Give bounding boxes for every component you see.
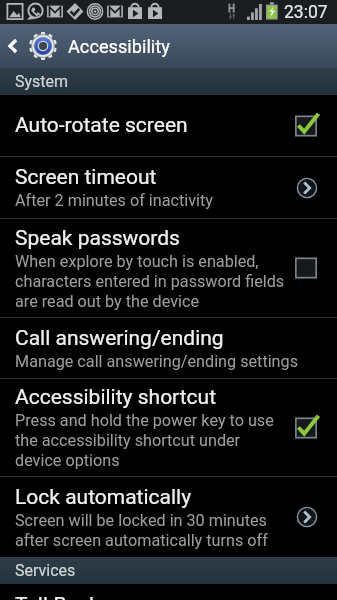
button[interactable]: TalkBack <box>0 584 337 600</box>
button[interactable]: Screen timeout <box>0 157 337 218</box>
button[interactable]: Call answering/ending <box>0 318 337 378</box>
staticText: Call answering/ending <box>15 326 224 351</box>
button[interactable]: Auto-rotate screen <box>0 95 337 156</box>
staticText: After 2 minutes of inactivity <box>15 191 213 210</box>
button[interactable]: Speak passwords <box>0 219 337 317</box>
staticText: System <box>15 72 69 91</box>
staticText: Screen will be locked in 30 minutes afte… <box>15 511 268 550</box>
button[interactable]: Lock automatically <box>0 477 337 557</box>
staticText: When explore by touch is enabled, charac… <box>15 252 285 311</box>
staticText: Accessibility shortcut <box>15 385 217 410</box>
staticText: Screen timeout <box>15 165 157 190</box>
staticText: Manage call answering/ending settings <box>15 352 298 371</box>
staticText: TalkBack <box>15 593 100 600</box>
staticText: Lock automatically <box>15 485 192 510</box>
staticText: Services <box>15 561 76 580</box>
staticText: Press and hold the power key to use the … <box>15 411 274 470</box>
staticText: Speak passwords <box>15 226 180 251</box>
staticText: Auto-rotate screen <box>15 113 188 138</box>
staticText: 23:07 <box>284 2 328 23</box>
button[interactable]: Accessibility shortcut <box>0 379 337 476</box>
button[interactable]: Back <box>0 24 26 68</box>
staticText: Accessibility <box>68 36 170 57</box>
